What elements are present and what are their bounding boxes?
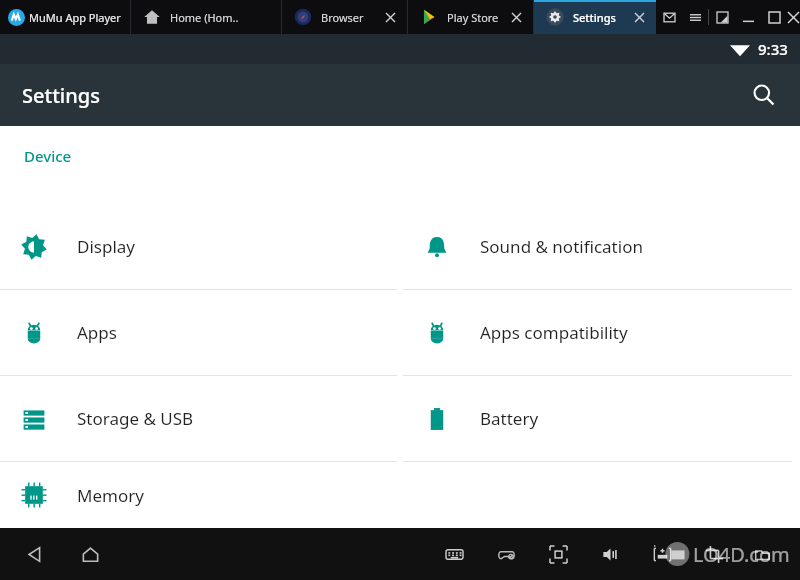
staticText: MuMu App Player bbox=[29, 10, 121, 25]
button[interactable]: Messages bbox=[656, 4, 682, 30]
button[interactable]: Install APK bbox=[646, 538, 678, 570]
staticText: Device bbox=[24, 146, 72, 166]
button[interactable]: Apps bbox=[0, 290, 397, 375]
button[interactable]: Resize bbox=[709, 4, 735, 30]
button[interactable]: MuMu App Player bbox=[0, 0, 130, 34]
staticText: Sound & notification bbox=[480, 235, 643, 258]
button[interactable]: Back bbox=[18, 538, 50, 570]
button[interactable]: Gamepad bbox=[490, 538, 522, 570]
staticText: Play Store bbox=[447, 10, 499, 25]
staticText: LO4D.com bbox=[693, 541, 790, 568]
staticText: Battery bbox=[480, 407, 539, 430]
button[interactable]: Search bbox=[742, 73, 786, 117]
button[interactable]: Display bbox=[0, 204, 397, 289]
button[interactable]: Apps compatibility bbox=[403, 290, 800, 375]
button[interactable]: Home (Hom.. bbox=[131, 0, 281, 34]
staticText: Apps bbox=[77, 321, 117, 344]
button[interactable]: Fullscreen bbox=[542, 538, 574, 570]
button[interactable]: Memory bbox=[0, 462, 397, 528]
button[interactable]: Keyboard bbox=[438, 538, 470, 570]
staticText: Apps compatibility bbox=[480, 321, 628, 344]
button[interactable]: Maximize bbox=[761, 4, 787, 30]
button[interactable]: Browser bbox=[282, 0, 407, 34]
button[interactable]: Storage & USB bbox=[0, 376, 397, 461]
staticText: Settings bbox=[573, 10, 616, 25]
button[interactable]: Menu bbox=[682, 4, 708, 30]
button[interactable]: Sound & notification bbox=[403, 204, 800, 289]
staticText: 9:33 bbox=[758, 39, 788, 59]
button[interactable]: Close tab bbox=[505, 6, 527, 28]
button[interactable]: Play Store bbox=[408, 0, 533, 34]
button[interactable]: Battery bbox=[403, 376, 800, 461]
button[interactable]: Volume bbox=[594, 538, 626, 570]
staticText: Home (Hom.. bbox=[170, 10, 239, 25]
button[interactable]: Screenshot bbox=[698, 538, 730, 570]
staticText: Settings bbox=[22, 82, 100, 109]
staticText: Browser bbox=[321, 10, 364, 25]
button[interactable]: Close bbox=[787, 4, 800, 30]
button[interactable]: Settings bbox=[534, 0, 656, 34]
staticText: Storage & USB bbox=[77, 407, 194, 430]
staticText: Memory bbox=[77, 484, 144, 507]
button[interactable]: Shared folder bbox=[746, 538, 778, 570]
button[interactable]: Home bbox=[74, 538, 106, 570]
button[interactable]: Close tab bbox=[379, 6, 401, 28]
button[interactable]: Minimize bbox=[735, 4, 761, 30]
button[interactable]: Close tab bbox=[628, 6, 650, 28]
staticText: Display bbox=[77, 235, 135, 258]
